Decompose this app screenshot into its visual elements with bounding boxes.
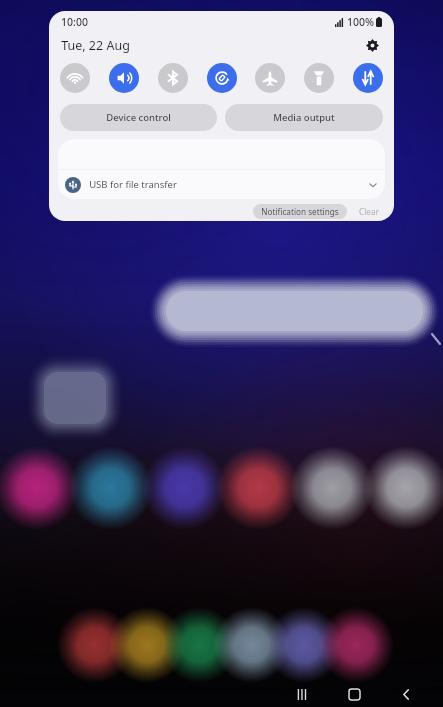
button[interactable]: Wi-Fi bbox=[60, 63, 90, 93]
staticText: USB for file transfer bbox=[89, 178, 177, 191]
button[interactable]: Settings bbox=[362, 35, 382, 55]
button[interactable]: Media output bbox=[225, 104, 383, 131]
button[interactable]: Mobile data bbox=[353, 63, 383, 93]
button[interactable]: Auto rotate bbox=[207, 63, 237, 93]
button[interactable]: Back bbox=[393, 681, 419, 707]
button[interactable]: Bluetooth bbox=[158, 63, 188, 93]
button[interactable]: Home bbox=[341, 681, 367, 707]
staticText: Tue, 22 Aug bbox=[61, 37, 130, 54]
staticText: Clear bbox=[359, 206, 379, 217]
button[interactable]: USB for file transfer bbox=[58, 170, 385, 199]
staticText: Notification settings bbox=[261, 206, 339, 217]
staticText: 100% bbox=[347, 15, 374, 29]
button[interactable]: Notification settings bbox=[253, 204, 347, 219]
other: Expand bbox=[368, 180, 378, 190]
staticText: 10:00 bbox=[61, 15, 88, 29]
staticText: Media output bbox=[273, 111, 335, 124]
staticText: Device control bbox=[106, 111, 171, 124]
button[interactable]: Sound bbox=[109, 63, 139, 93]
button[interactable]: Flashlight bbox=[304, 63, 334, 93]
button[interactable]: Clear bbox=[353, 204, 385, 219]
button[interactable]: Device control bbox=[60, 104, 217, 131]
button[interactable]: Airplane mode bbox=[255, 63, 285, 93]
button[interactable]: Recents bbox=[289, 681, 315, 707]
